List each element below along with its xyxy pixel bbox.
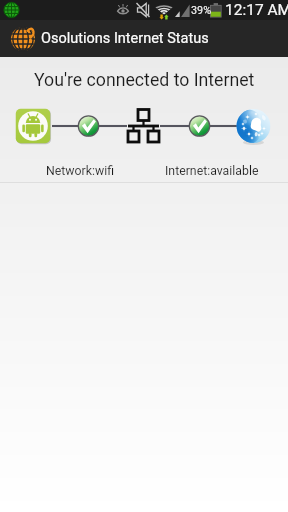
- staticText: 12:17 AM: [225, 1, 288, 19]
- other: App icon: [10, 26, 36, 52]
- staticText: Network:wifi: [46, 164, 114, 178]
- staticText: 39%: [191, 4, 212, 17]
- staticText: You're connected to Internet: [34, 70, 255, 91]
- staticText: Osolutions Internet Status: [41, 30, 209, 47]
- button[interactable]: App icon: [0, 20, 288, 57]
- staticText: Internet:available: [165, 164, 259, 178]
